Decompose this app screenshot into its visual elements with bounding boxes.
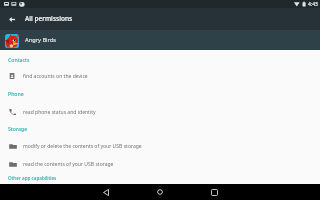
button[interactable]: Home	[148, 184, 172, 200]
button[interactable]: read the contents of your USB storage	[0, 156, 320, 172]
staticText: find accounts on the device	[23, 73, 88, 80]
staticText: read the contents of your USB storage	[23, 161, 114, 168]
button[interactable]: Back	[94, 184, 118, 200]
button[interactable]: Contacts	[8, 55, 30, 64]
button[interactable]: Phone	[8, 89, 24, 98]
button[interactable]: Storage	[8, 124, 28, 133]
button[interactable]: Recent apps	[202, 184, 226, 200]
staticText: Storage	[8, 125, 28, 132]
button[interactable]: modify or delete the contents of your US…	[0, 138, 320, 154]
button[interactable]: find accounts on the device	[0, 68, 320, 84]
button[interactable]: Other app capabilities	[8, 174, 57, 182]
button[interactable]: Angry Birds	[0, 30, 320, 50]
button[interactable]: Back	[4, 11, 20, 27]
staticText: Phone	[8, 90, 24, 97]
staticText: Angry Birds	[25, 36, 56, 44]
staticText: read phone status and identity	[23, 109, 96, 116]
staticText: All permissions	[25, 14, 73, 23]
staticText: modify or delete the contents of your US…	[23, 143, 142, 150]
button[interactable]: read phone status and identity	[0, 104, 320, 120]
staticText: Contacts	[8, 56, 30, 63]
staticText: 4:43	[308, 1, 318, 8]
staticText: Other app capabilities	[8, 175, 57, 181]
